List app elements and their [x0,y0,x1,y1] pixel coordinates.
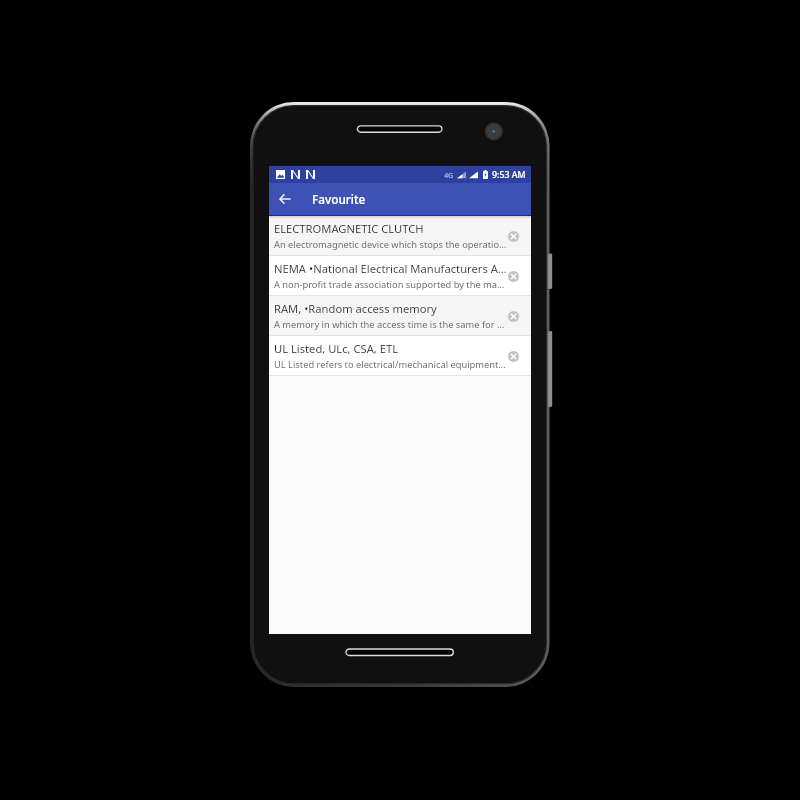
staticText: A non-profit trade association supported… [274,278,507,291]
staticText: UL Listed refers to electrical/mechanica… [274,358,507,371]
staticText: NEMA •National Electrical Manufacturers … [274,261,507,276]
staticText: An electromagnetic device which stops th… [274,238,507,251]
button[interactable]: Remove from favourites [503,306,524,327]
button[interactable]: NEMA •National Electrical Manufacturers … [269,256,531,296]
button[interactable]: Back [269,183,301,215]
staticText: A memory in which the access time is the… [274,318,507,331]
staticText: 9:53 AM [492,169,526,181]
staticText: Favourite [312,191,366,207]
button[interactable]: Remove from favourites [503,226,524,247]
staticText: RAM, •Random access memory [274,301,437,316]
button[interactable]: Remove from favourites [503,346,524,367]
button[interactable]: RAM, •Random access memory [269,296,531,336]
staticText: ELECTROMAGNETIC CLUTCH [274,221,424,236]
staticText: UL Listed, ULc, CSA, ETL [274,341,399,356]
button[interactable]: UL Listed, ULc, CSA, ETL [269,336,531,376]
staticText: 4G [444,170,454,180]
button[interactable]: Remove from favourites [503,266,524,287]
button[interactable]: ELECTROMAGNETIC CLUTCH [269,216,531,256]
